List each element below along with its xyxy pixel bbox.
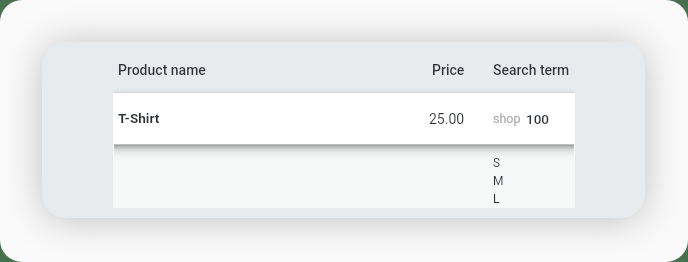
staticText: L xyxy=(493,192,500,206)
staticText: T-Shirt xyxy=(118,110,160,126)
button[interactable]: S xyxy=(113,144,575,208)
staticText: Price xyxy=(432,62,465,78)
staticText: 100 xyxy=(526,111,550,127)
staticText: 25.00 xyxy=(429,111,465,127)
staticText: M xyxy=(493,174,504,188)
staticText: Search term xyxy=(493,62,570,78)
button[interactable]: T-Shirt xyxy=(113,93,575,144)
staticText: S xyxy=(493,156,501,170)
staticText: shop xyxy=(493,111,521,126)
staticText: Product name xyxy=(118,62,206,78)
